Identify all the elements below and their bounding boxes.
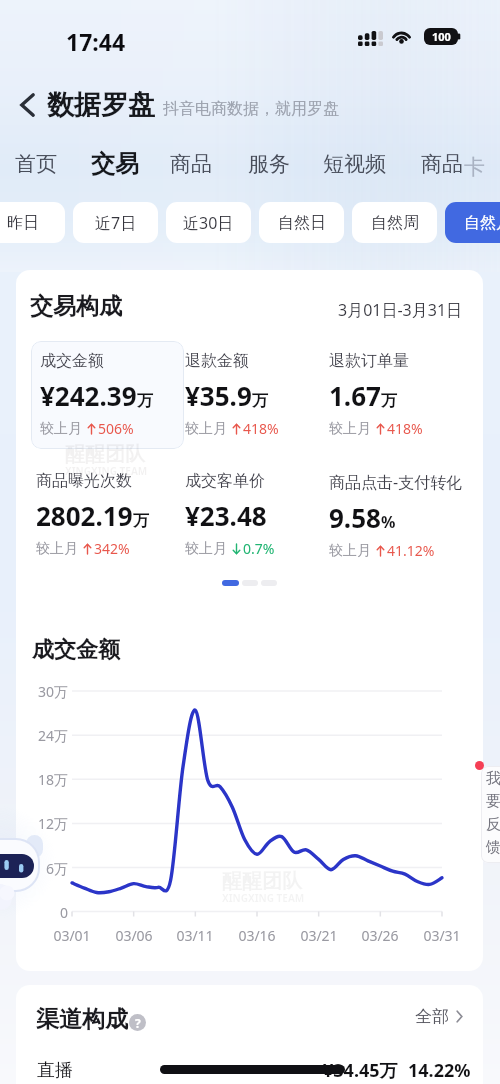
- staticText: 较上月: [185, 540, 227, 558]
- button[interactable]: 近7日: [73, 202, 158, 243]
- staticText: 自然日: [278, 213, 326, 233]
- staticText: ¥35.9: [185, 378, 252, 413]
- button[interactable]: 商品: [421, 147, 463, 181]
- staticText: 交易构成: [30, 292, 122, 321]
- staticText: 自然周: [371, 213, 419, 233]
- button[interactable]: 成交金额: [40, 351, 153, 438]
- staticText: 较上月: [185, 420, 227, 438]
- staticText: 03/31: [417, 926, 467, 945]
- staticText: 商品: [421, 151, 463, 177]
- staticText: 抖音电商数据，就用罗盘: [163, 99, 339, 119]
- staticText: 短视频: [323, 151, 386, 177]
- button[interactable]: 近30日: [166, 202, 251, 243]
- staticText: 醒醒团队: [65, 442, 145, 467]
- staticText: 服务: [248, 151, 290, 177]
- staticText: 3月01日-3月31日: [338, 299, 463, 321]
- button[interactable]: 首页: [15, 147, 57, 181]
- staticText: XINGXING TEAM: [65, 464, 148, 478]
- button[interactable]: 商品曝光次数: [36, 471, 149, 558]
- staticText: 商品: [170, 151, 212, 177]
- staticText: 商品曝光次数: [36, 471, 132, 491]
- staticText: 首页: [15, 151, 57, 177]
- button[interactable]: 服务: [248, 147, 290, 181]
- staticText: 全部: [415, 1006, 449, 1027]
- button[interactable]: 短视频: [323, 147, 386, 181]
- staticText: 自然月: [464, 213, 500, 233]
- staticText: 17:44: [66, 26, 126, 57]
- staticText: 我: [486, 769, 500, 788]
- staticText: 03/16: [232, 926, 282, 945]
- staticText: ¥23.48: [185, 498, 267, 533]
- staticText: 渠道构成: [36, 1005, 128, 1034]
- staticText: 03/06: [109, 926, 159, 945]
- staticText: 近7日: [95, 212, 137, 234]
- staticText: 数据罗盘: [47, 88, 155, 122]
- staticText: 14.22%: [408, 1058, 471, 1083]
- button[interactable]: 退款金额: [185, 351, 279, 438]
- staticText: 退款金额: [185, 351, 249, 371]
- button[interactable]: 我要反馈: [481, 766, 500, 863]
- staticText: 12万: [22, 814, 68, 833]
- staticText: 卡: [464, 154, 485, 180]
- button[interactable]: 交易: [91, 147, 139, 181]
- staticText: 6万: [22, 859, 68, 878]
- staticText: 退款订单量: [329, 351, 409, 371]
- staticText: 昨日: [7, 213, 39, 233]
- staticText: 418%: [387, 419, 423, 438]
- button[interactable]: Back: [12, 90, 42, 120]
- staticText: 1.67: [329, 378, 381, 413]
- staticText: 馈: [486, 838, 500, 857]
- staticText: 100: [432, 29, 451, 44]
- staticText: 交易: [91, 149, 139, 179]
- staticText: 03/01: [47, 926, 97, 945]
- staticText: ?: [135, 1015, 141, 1031]
- staticText: 30万: [22, 682, 68, 701]
- staticText: 成交金额: [32, 636, 120, 664]
- button[interactable]: [31, 341, 184, 449]
- staticText: 反: [486, 815, 500, 834]
- staticText: 万: [381, 391, 397, 411]
- staticText: 万: [252, 391, 268, 411]
- button[interactable]: 自然日: [259, 202, 344, 243]
- staticText: 要: [486, 792, 500, 811]
- staticText: 03/26: [355, 926, 405, 945]
- staticText: 2802.19: [36, 498, 133, 533]
- button[interactable]: 全部: [415, 1006, 463, 1027]
- button[interactable]: 退款订单量: [329, 351, 423, 438]
- staticText: 418%: [243, 419, 279, 438]
- staticText: %: [381, 511, 396, 533]
- staticText: 商品点击-支付转化: [329, 471, 463, 493]
- button[interactable]: 成交客单价: [185, 471, 275, 558]
- staticText: 03/11: [170, 926, 220, 945]
- staticText: 9.58: [329, 500, 381, 535]
- staticText: 较上月: [329, 542, 371, 560]
- staticText: 0.7%: [243, 539, 275, 558]
- staticText: 41.12%: [387, 541, 435, 560]
- button[interactable]: 商品点击-支付转化: [329, 471, 463, 560]
- button[interactable]: 自然月: [445, 202, 500, 243]
- staticText: ¥242.39: [40, 378, 137, 413]
- staticText: 0: [22, 903, 68, 922]
- staticText: XINGXING TEAM: [222, 891, 305, 905]
- staticText: 近30日: [183, 212, 234, 234]
- staticText: 506%: [98, 419, 134, 438]
- button[interactable]: 自然周: [352, 202, 437, 243]
- staticText: 较上月: [36, 540, 78, 558]
- staticText: 万: [133, 511, 149, 531]
- button[interactable]: 商品: [170, 147, 212, 181]
- staticText: ¥34.45万: [323, 1058, 398, 1083]
- staticText: 较上月: [40, 420, 82, 438]
- staticText: 342%: [94, 539, 130, 558]
- staticText: 03/21: [294, 926, 344, 945]
- button[interactable]: 昨日: [0, 202, 65, 243]
- staticText: 较上月: [329, 420, 371, 438]
- staticText: 18万: [22, 770, 68, 789]
- staticText: 万: [137, 391, 153, 411]
- staticText: 直播: [37, 1059, 73, 1082]
- staticText: 24万: [22, 726, 68, 745]
- staticText: 成交金额: [40, 351, 104, 371]
- staticText: 成交客单价: [185, 471, 265, 491]
- staticText: 醒醒团队: [222, 869, 302, 894]
